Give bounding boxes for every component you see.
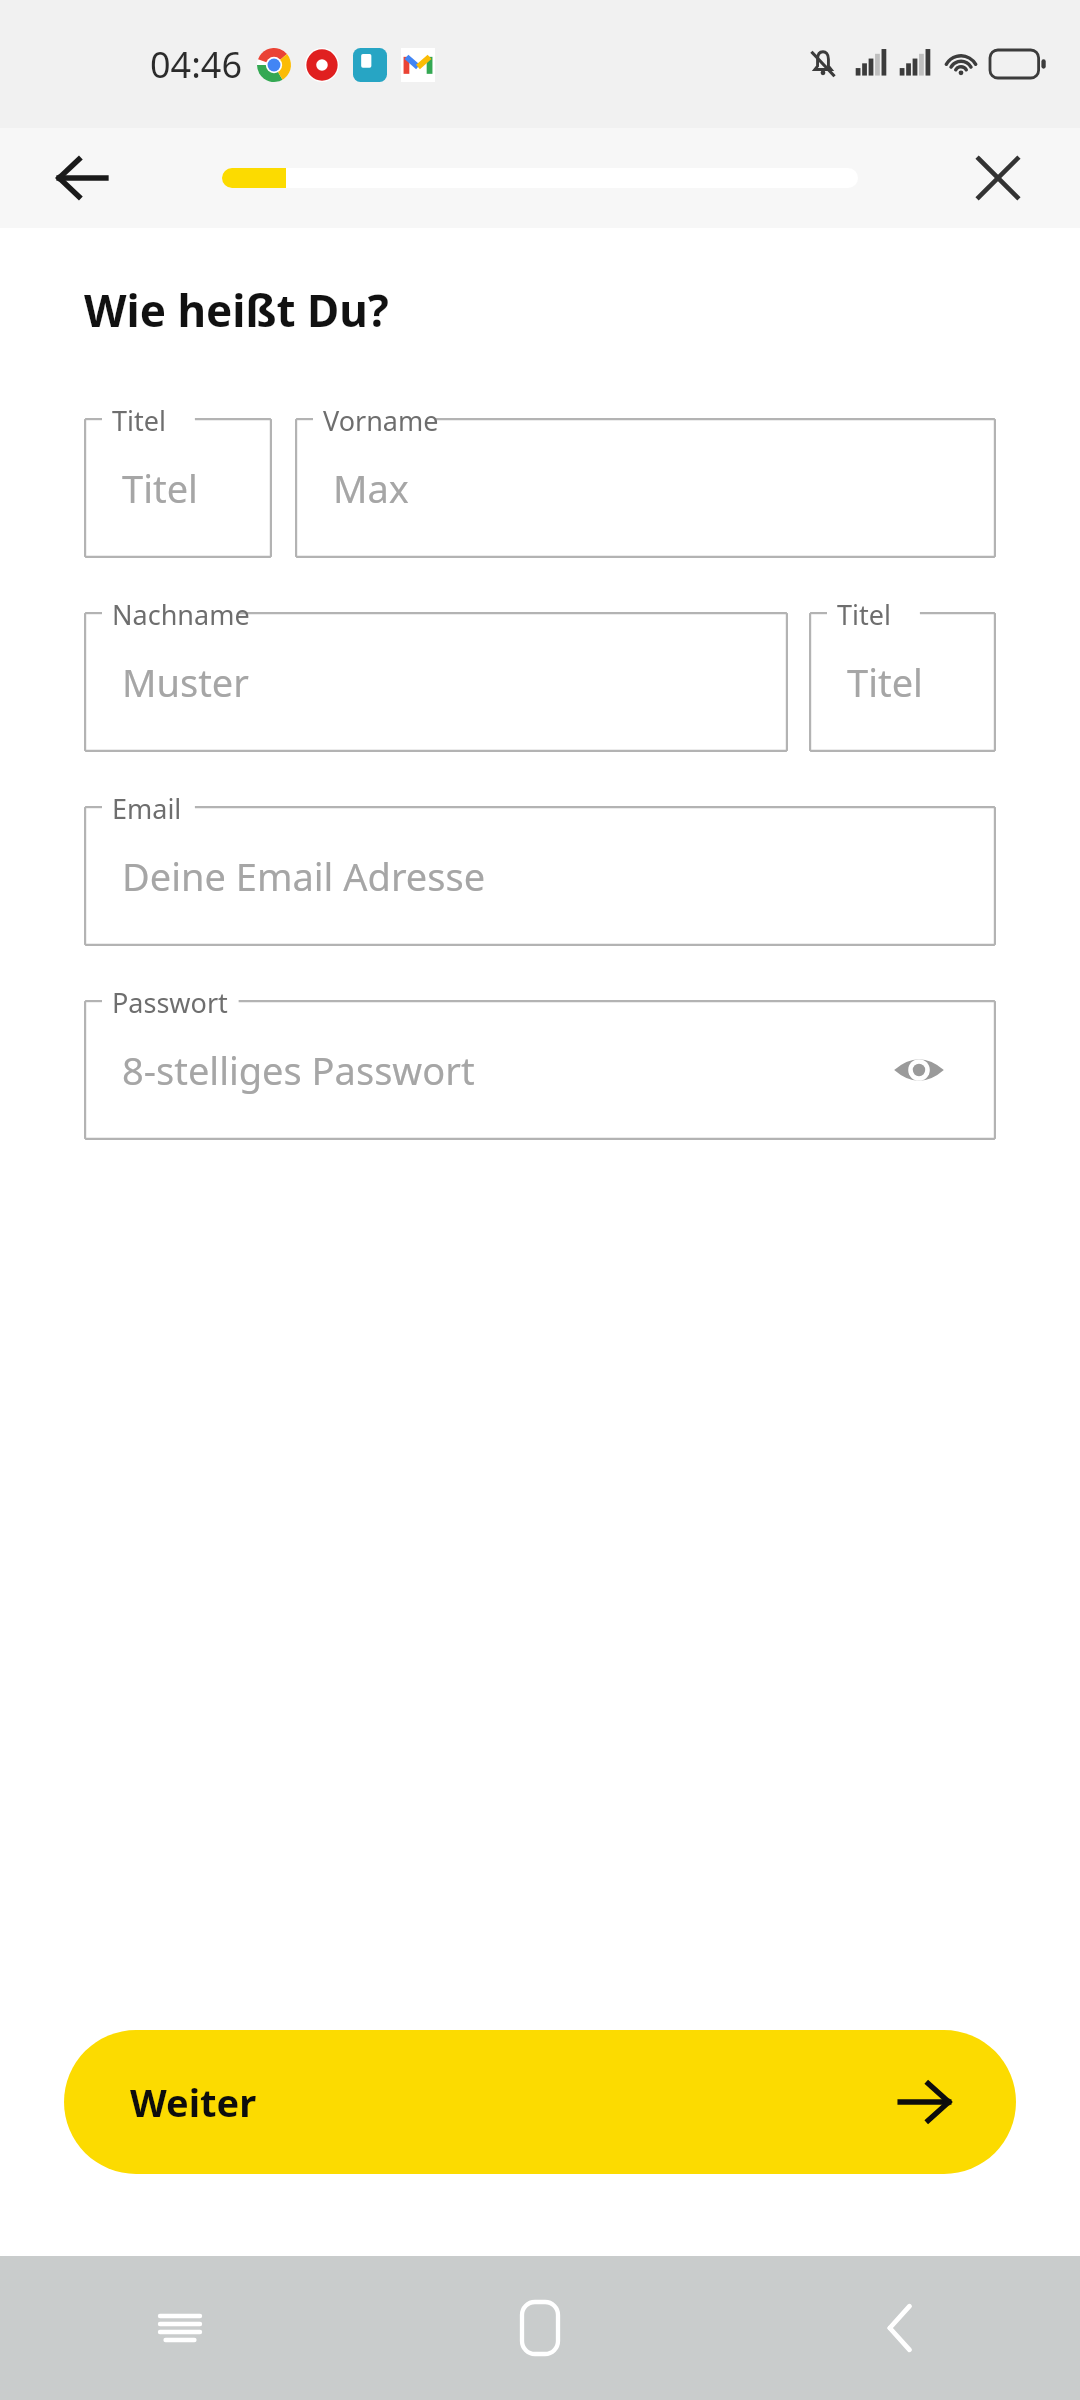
button[interactable]: Passwort — [84, 1000, 996, 1140]
button[interactable]: Show password — [884, 1035, 954, 1105]
staticText: Vorname — [323, 402, 439, 439]
button[interactable]: Back — [720, 2256, 1080, 2400]
button[interactable]: Vorname — [295, 418, 996, 558]
staticText: Titel — [122, 462, 198, 514]
button[interactable]: Recent apps — [0, 2256, 360, 2400]
button[interactable]: Titel — [84, 418, 272, 558]
staticText: Deine Email Adresse — [122, 850, 486, 902]
staticText: Nachname — [112, 596, 250, 633]
staticText: Titel — [837, 596, 891, 633]
button[interactable]: Email — [84, 806, 996, 946]
staticText: Weiter — [130, 2076, 257, 2128]
staticText: 8-stelliges Passwort — [122, 1044, 475, 1096]
staticText: Wie heißt Du? — [84, 280, 389, 340]
staticText: Muster — [122, 656, 249, 708]
staticText: 04:46 — [150, 40, 243, 89]
staticText: Max — [333, 462, 409, 514]
button[interactable]: Back — [34, 130, 130, 226]
staticText: Passwort — [112, 984, 228, 1021]
staticText: Titel — [847, 656, 923, 708]
button[interactable]: Weiter — [64, 2030, 1016, 2174]
button[interactable]: Nachname — [84, 612, 788, 752]
button[interactable]: Close — [950, 130, 1046, 226]
staticText: Email — [112, 790, 182, 827]
staticText: Titel — [112, 402, 166, 439]
button[interactable]: Titel — [809, 612, 996, 752]
button[interactable]: Home — [360, 2256, 720, 2400]
